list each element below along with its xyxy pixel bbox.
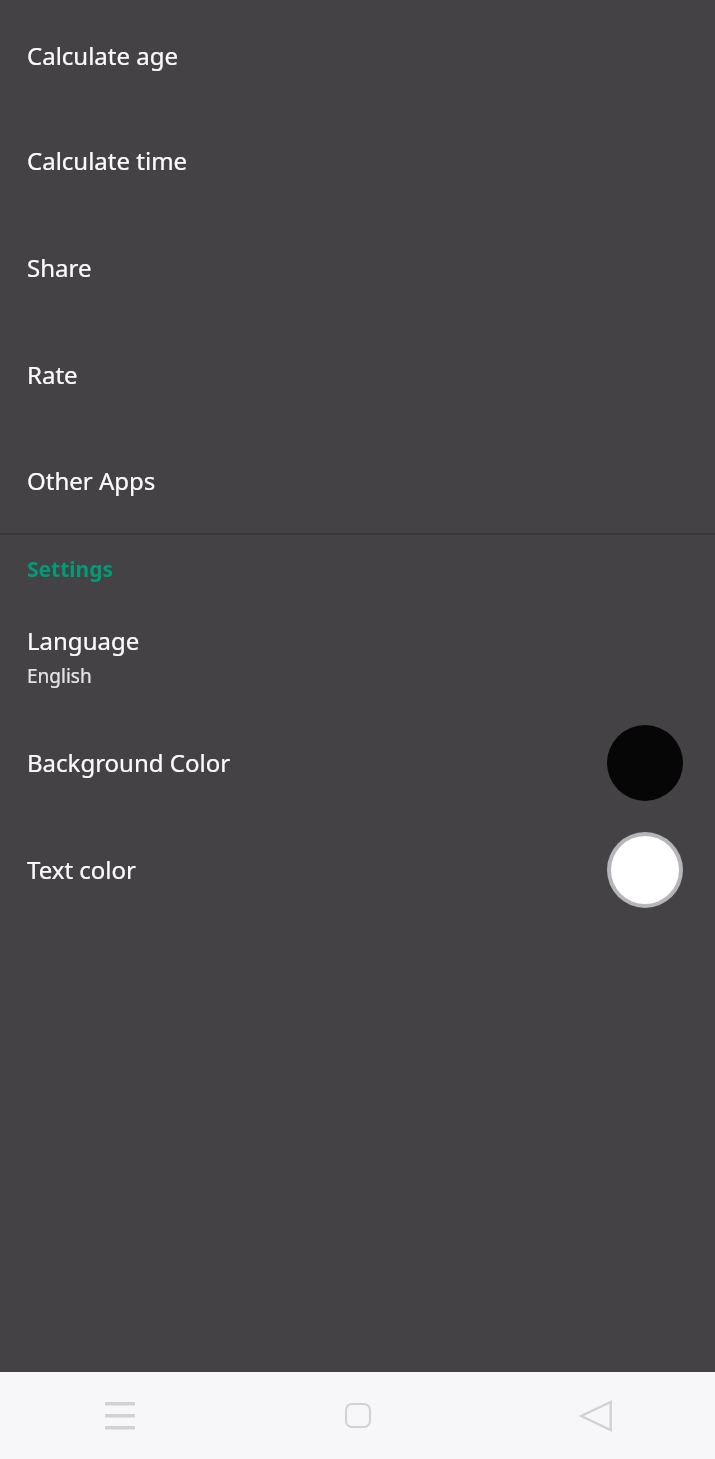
staticText: Text color [27, 853, 607, 886]
button[interactable]: Text color [0, 816, 715, 923]
button[interactable]: Rate [0, 321, 715, 428]
button[interactable]: Background Color [0, 709, 715, 816]
staticText: Other Apps [27, 464, 156, 497]
button[interactable]: Share [0, 214, 715, 321]
staticText: Settings [27, 555, 114, 584]
staticText: English [27, 663, 92, 689]
button[interactable]: Back [477, 1372, 715, 1459]
button[interactable]: Calculate time [0, 107, 715, 214]
staticText: Share [27, 251, 92, 284]
button[interactable]: Other Apps [0, 428, 715, 532]
button[interactable]: Recent apps [0, 1372, 239, 1459]
staticText: Background Color [27, 746, 607, 779]
button[interactable]: Home [239, 1372, 477, 1459]
button[interactable]: Language [0, 603, 715, 709]
staticText: Calculate time [27, 144, 188, 177]
staticText: Calculate age [27, 39, 179, 72]
button[interactable]: Calculate age [0, 3, 715, 107]
staticText: Rate [27, 358, 78, 391]
staticText: Language [27, 624, 140, 657]
